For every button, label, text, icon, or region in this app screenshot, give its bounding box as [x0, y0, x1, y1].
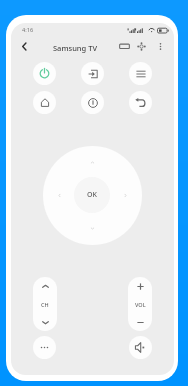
button[interactable]: Home — [33, 91, 56, 114]
staticText: OK — [87, 190, 97, 200]
button[interactable]: VOL down — [128, 313, 152, 331]
button[interactable]: More options — [33, 336, 56, 359]
button[interactable]: Source — [81, 62, 104, 85]
button[interactable]: Power — [33, 62, 56, 85]
button[interactable]: Cast — [116, 38, 132, 54]
staticText: 4:16 — [22, 26, 34, 34]
button[interactable]: VOL up — [128, 277, 152, 295]
button[interactable]: Right — [118, 188, 132, 202]
button[interactable]: Mute — [129, 336, 152, 359]
button[interactable]: Left — [52, 188, 66, 202]
button[interactable]: Back — [129, 91, 152, 114]
button[interactable]: Menu — [129, 62, 152, 85]
button[interactable]: CH up — [33, 277, 57, 295]
staticText: VOL — [135, 301, 146, 308]
button[interactable]: Down — [85, 221, 99, 235]
button[interactable]: Up — [85, 155, 99, 169]
button[interactable]: Display settings — [133, 38, 149, 54]
button[interactable]: CH down — [33, 313, 57, 331]
button[interactable]: More options — [152, 38, 168, 54]
button[interactable]: Info — [81, 91, 104, 114]
staticText: CH — [41, 301, 49, 308]
button[interactable]: OK — [74, 177, 110, 213]
staticText: Samsung TV — [53, 43, 97, 53]
button[interactable]: Back — [16, 38, 32, 54]
